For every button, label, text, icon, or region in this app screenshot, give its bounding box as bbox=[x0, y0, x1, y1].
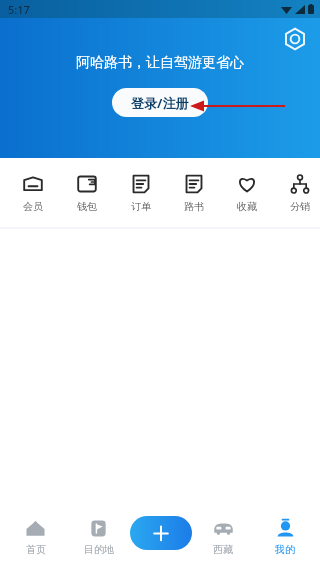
button[interactable]: 钱包 bbox=[60, 169, 114, 217]
button[interactable]: 目的地 bbox=[67, 505, 130, 566]
staticText: 阿哈路书，让自驾游更省心 bbox=[76, 54, 244, 72]
staticText: 登录/注册 bbox=[131, 94, 189, 112]
staticText: 分销 bbox=[290, 200, 310, 213]
staticText: 我的 bbox=[275, 543, 295, 556]
button[interactable]: 首页 bbox=[4, 505, 67, 566]
staticText: 目的地 bbox=[84, 543, 114, 556]
button[interactable]: 会员 bbox=[6, 169, 60, 217]
staticText: 会员 bbox=[23, 200, 43, 213]
staticText: 西藏 bbox=[213, 543, 233, 556]
staticText: 收藏 bbox=[237, 200, 257, 213]
button[interactable]: 订单 bbox=[114, 169, 167, 217]
staticText: 5:17 bbox=[8, 2, 30, 17]
staticText: 钱包 bbox=[77, 200, 97, 213]
button[interactable]: 我的 bbox=[254, 505, 316, 566]
button[interactable]: 登录/注册 bbox=[112, 88, 208, 117]
staticText: 路书 bbox=[184, 200, 204, 213]
button[interactable]: 分销 bbox=[273, 169, 320, 217]
button[interactable]: 西藏 bbox=[192, 505, 254, 566]
button[interactable]: 路书 bbox=[167, 169, 220, 217]
button[interactable]: Create bbox=[130, 516, 192, 550]
button[interactable]: Settings bbox=[282, 26, 308, 52]
button[interactable]: 收藏 bbox=[220, 169, 273, 217]
staticText: 订单 bbox=[131, 200, 151, 213]
staticText: 首页 bbox=[26, 543, 46, 556]
